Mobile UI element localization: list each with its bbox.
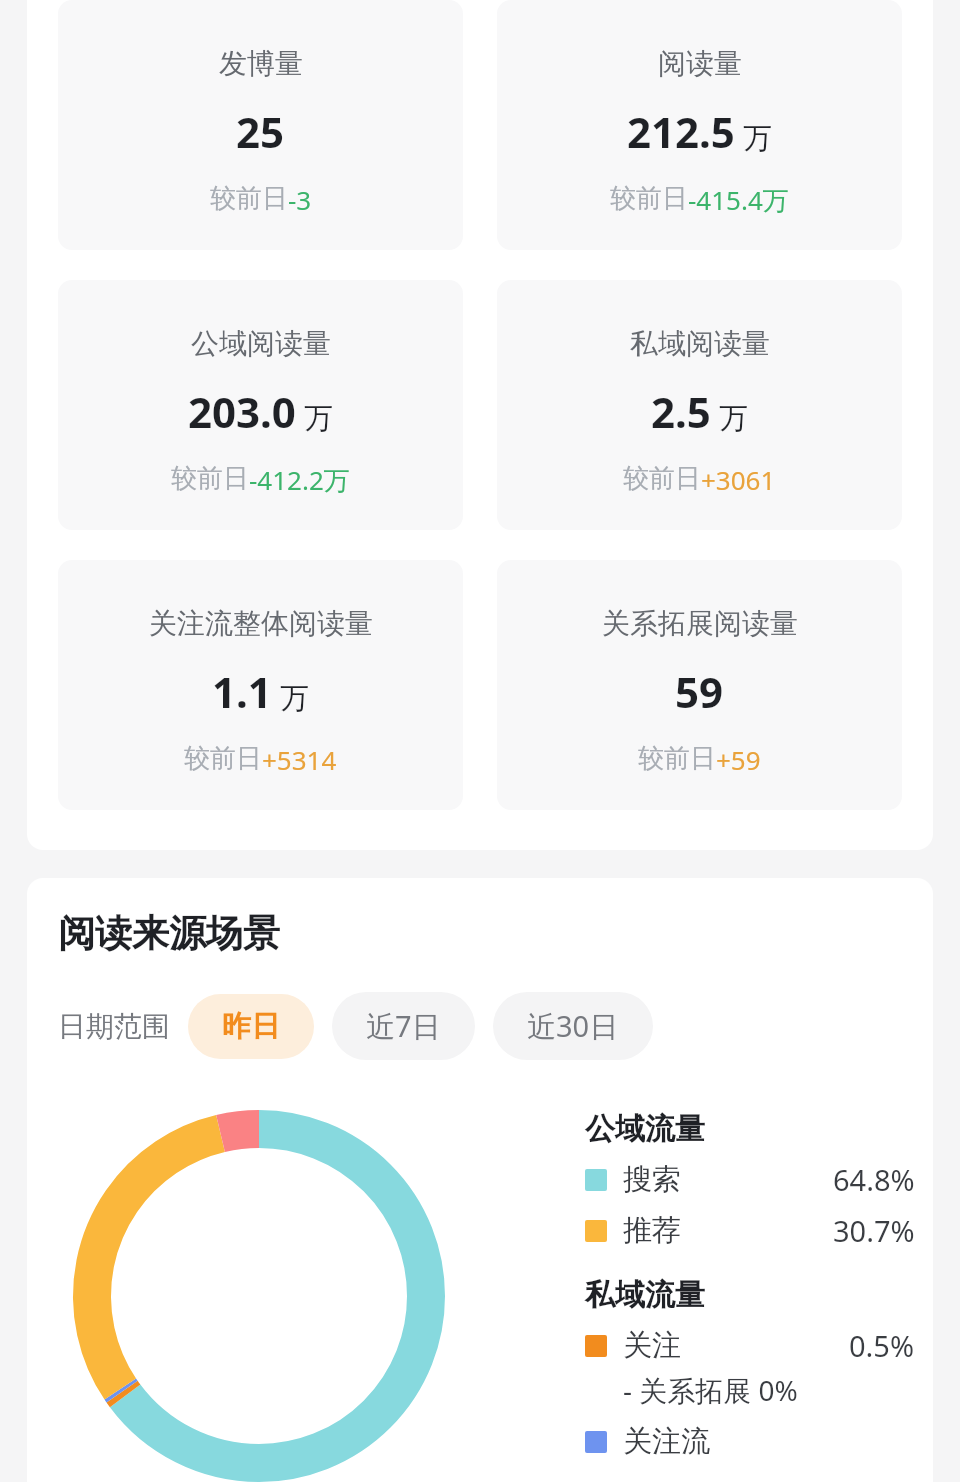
staticText: 日期范围 (58, 1009, 170, 1044)
staticText: 212.5 (627, 103, 735, 160)
staticText: 0.5% (849, 1326, 915, 1365)
button[interactable]: 关注流整体阅读量 (58, 560, 463, 810)
button[interactable]: 关注 (585, 1326, 915, 1365)
staticText: 较前日 (171, 462, 249, 495)
staticText: 关注流整体阅读量 (149, 606, 373, 641)
button[interactable]: 发博量 (58, 0, 463, 250)
staticText: 私域流量 (585, 1276, 705, 1314)
staticText: 较前日 (623, 462, 701, 495)
staticText: -3 (288, 182, 312, 217)
staticText: 昨日 (222, 1008, 280, 1045)
staticText: 1.1 (212, 663, 272, 720)
staticText: 2.5 (651, 383, 711, 440)
staticText: 关注 (623, 1327, 681, 1364)
staticText: +5314 (262, 742, 337, 777)
staticText: 较前日 (210, 182, 288, 215)
staticText: 关系拓展阅读量 (602, 606, 798, 641)
staticText: 203.0 (188, 383, 296, 440)
staticText: 近30日 (527, 1006, 619, 1046)
staticText: 25 (236, 103, 285, 160)
staticText: 30.7% (833, 1211, 915, 1250)
staticText: 搜索 (623, 1161, 681, 1198)
staticText: 公域阅读量 (191, 326, 331, 361)
staticText: +3061 (701, 462, 776, 497)
staticText: 阅读来源场景 (58, 910, 280, 957)
button[interactable]: 私域阅读量 (497, 280, 902, 530)
staticText: +59 (716, 742, 761, 777)
staticText: 59 (675, 663, 724, 720)
staticText: -412.2万 (249, 462, 350, 498)
staticText: - 关系拓展 0% (623, 1371, 798, 1409)
staticText: 64.8% (833, 1160, 915, 1199)
staticText: 阅读量 (658, 46, 742, 81)
staticText: 万 (743, 120, 772, 157)
button[interactable]: 昨日 (188, 994, 314, 1059)
button[interactable]: 关系拓展阅读量 (497, 560, 902, 810)
staticText: 公域流量 (585, 1110, 705, 1148)
staticText: 万 (719, 400, 748, 437)
staticText: 万 (304, 400, 333, 437)
staticText: 推荐 (623, 1212, 681, 1249)
staticText: 关注流 (623, 1423, 710, 1460)
staticText: 较前日 (638, 742, 716, 775)
button[interactable]: 搜索 (585, 1160, 915, 1199)
staticText: 发博量 (219, 46, 303, 81)
staticText: 私域阅读量 (630, 326, 770, 361)
button[interactable]: 公域阅读量 (58, 280, 463, 530)
staticText: 较前日 (184, 742, 262, 775)
other: 阅读来源场景占比环形图 (73, 1110, 511, 1482)
staticText: -415.4万 (688, 182, 789, 218)
staticText: 较前日 (610, 182, 688, 215)
staticText: 近7日 (366, 1006, 441, 1046)
button[interactable]: 阅读量 (497, 0, 902, 250)
button[interactable]: 近30日 (493, 992, 653, 1060)
button[interactable]: 关注流 (585, 1423, 915, 1460)
staticText: 万 (280, 680, 309, 717)
button[interactable]: 推荐 (585, 1211, 915, 1250)
button[interactable]: 近7日 (332, 992, 475, 1060)
